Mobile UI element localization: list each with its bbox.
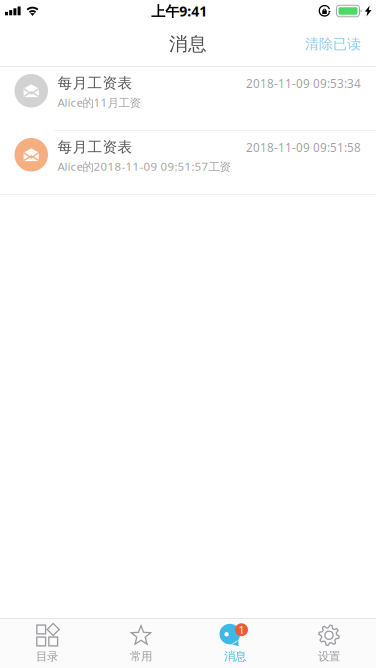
staticText: 2018-11-09 09:53:34 <box>246 76 361 92</box>
staticText: 每月工资表 <box>57 74 132 92</box>
staticText: 消息 <box>224 649 246 664</box>
button[interactable]: 设置 <box>282 617 376 668</box>
staticText: 上午9:41 <box>151 1 207 21</box>
staticText: 设置 <box>318 649 340 664</box>
button[interactable]: 常用 <box>94 617 188 668</box>
staticText: 清除已读 <box>305 35 361 53</box>
staticText: 常用 <box>130 649 152 664</box>
button[interactable]: 目录 <box>0 617 94 668</box>
staticText: 消息 <box>169 32 207 56</box>
button[interactable]: 每月工资表 <box>0 131 376 195</box>
button[interactable]: 每月工资表 <box>0 67 376 131</box>
button[interactable]: 1 <box>188 617 282 668</box>
staticText: 1 <box>238 622 244 637</box>
staticText: Alice的2018-11-09 09:51:57工资 <box>57 158 230 174</box>
staticText: 每月工资表 <box>57 138 132 156</box>
staticText: 2018-11-09 09:51:58 <box>246 140 361 156</box>
staticText: Alice的11月工资 <box>57 94 140 110</box>
staticText: 目录 <box>36 649 58 664</box>
button[interactable]: 清除已读 <box>291 25 376 63</box>
